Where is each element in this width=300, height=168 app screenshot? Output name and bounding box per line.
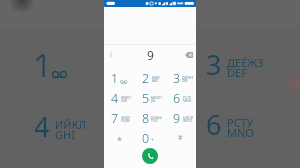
button[interactable]: 8 [134,108,165,128]
button[interactable]: 3 [206,46,264,83]
button[interactable]: Backspace [183,49,194,60]
staticText: 6 [206,106,222,143]
staticText: 4 [34,108,50,145]
staticText: ИЙКЛ GHI [55,117,87,142]
other: Voicemail [52,52,68,79]
staticText: 0 [142,130,150,147]
staticText: 4 [111,90,119,107]
staticText: 3 [206,46,222,83]
staticText: 9 [173,110,181,127]
staticText: МНОП JKL [151,95,162,103]
staticText: ФХЦЧ PQRS [121,115,131,123]
staticText: РСТУ MNO [183,95,192,103]
staticText: 1 [111,70,119,87]
staticText: 5 [142,90,150,107]
staticText: 7 [111,110,119,127]
button[interactable]: Call [142,148,158,164]
staticText: # [178,133,183,143]
staticText: ШЩЪЫ TUV [151,115,162,123]
staticText: * [117,134,122,146]
button[interactable]: Voicemail [35,52,68,79]
staticText: + [151,137,154,144]
staticText: 8 [142,110,150,127]
button[interactable]: 6 [206,106,254,143]
staticText: РСТУ MNO [227,115,254,140]
button[interactable]: 6 [165,88,196,108]
button[interactable]: 0 [134,128,165,148]
button[interactable]: 2 [134,68,165,88]
button[interactable]: 1 [104,68,134,88]
staticText: ДЕЁЖЗ DEF [182,75,193,83]
staticText: 9 [147,47,154,63]
staticText: ИЙКЛ GHI [121,95,131,103]
button[interactable]: # [165,128,196,148]
button[interactable]: 3 [165,68,196,88]
staticText: АБВГ ABC [152,75,161,83]
button[interactable]: 9 [165,108,196,128]
staticText: 2 [142,70,150,87]
button[interactable]: 5 [134,88,165,108]
staticText: ЬЭЮЯ WXYZ [183,115,193,123]
staticText: ДЕЁЖЗ DEF [227,55,264,80]
button[interactable]: 4 [34,108,87,145]
button[interactable]: 4 [104,88,134,108]
staticText: 3 [173,70,181,87]
button[interactable]: * [104,128,134,148]
staticText: 6 [173,90,181,107]
button[interactable]: 7 [104,108,134,128]
button[interactable]: Add to contacts [109,51,113,58]
